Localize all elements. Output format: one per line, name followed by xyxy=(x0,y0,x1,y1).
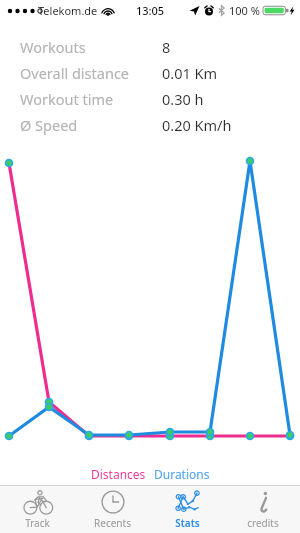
staticText: 13:05 xyxy=(136,3,165,18)
staticText: Durations xyxy=(154,466,210,482)
staticText: Telekom.de xyxy=(38,3,98,18)
staticText: Workouts xyxy=(20,37,86,57)
staticText: 8 xyxy=(162,37,171,57)
button[interactable]: credits xyxy=(225,486,300,533)
staticText: Overall distance xyxy=(20,63,130,83)
staticText: 100 % xyxy=(229,3,260,18)
button[interactable]: Stats xyxy=(150,486,225,533)
button[interactable]: Track xyxy=(0,486,75,533)
button[interactable]: Recents xyxy=(75,486,150,533)
staticText: Ø Speed xyxy=(20,115,78,135)
staticText: Stats xyxy=(175,516,200,530)
staticText: Distances xyxy=(91,466,146,482)
staticText: credits xyxy=(247,516,279,530)
staticText: Track xyxy=(25,516,50,530)
staticText: 0.30 h xyxy=(162,89,204,109)
staticText: Workout time xyxy=(20,89,114,109)
staticText: 0.01 Km xyxy=(162,63,218,83)
staticText: Recents xyxy=(94,516,131,530)
staticText: 0.20 Km/h xyxy=(162,115,232,135)
